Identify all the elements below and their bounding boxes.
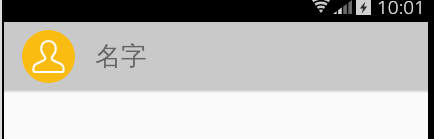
other: Account — [22, 30, 75, 83]
button[interactable]: Account — [4, 22, 428, 90]
other: Wi-Fi — [309, 0, 333, 13]
other: Signal strength — [333, 0, 352, 14]
staticText: 名字 — [95, 40, 147, 73]
staticText: 10:01 — [377, 0, 426, 16]
